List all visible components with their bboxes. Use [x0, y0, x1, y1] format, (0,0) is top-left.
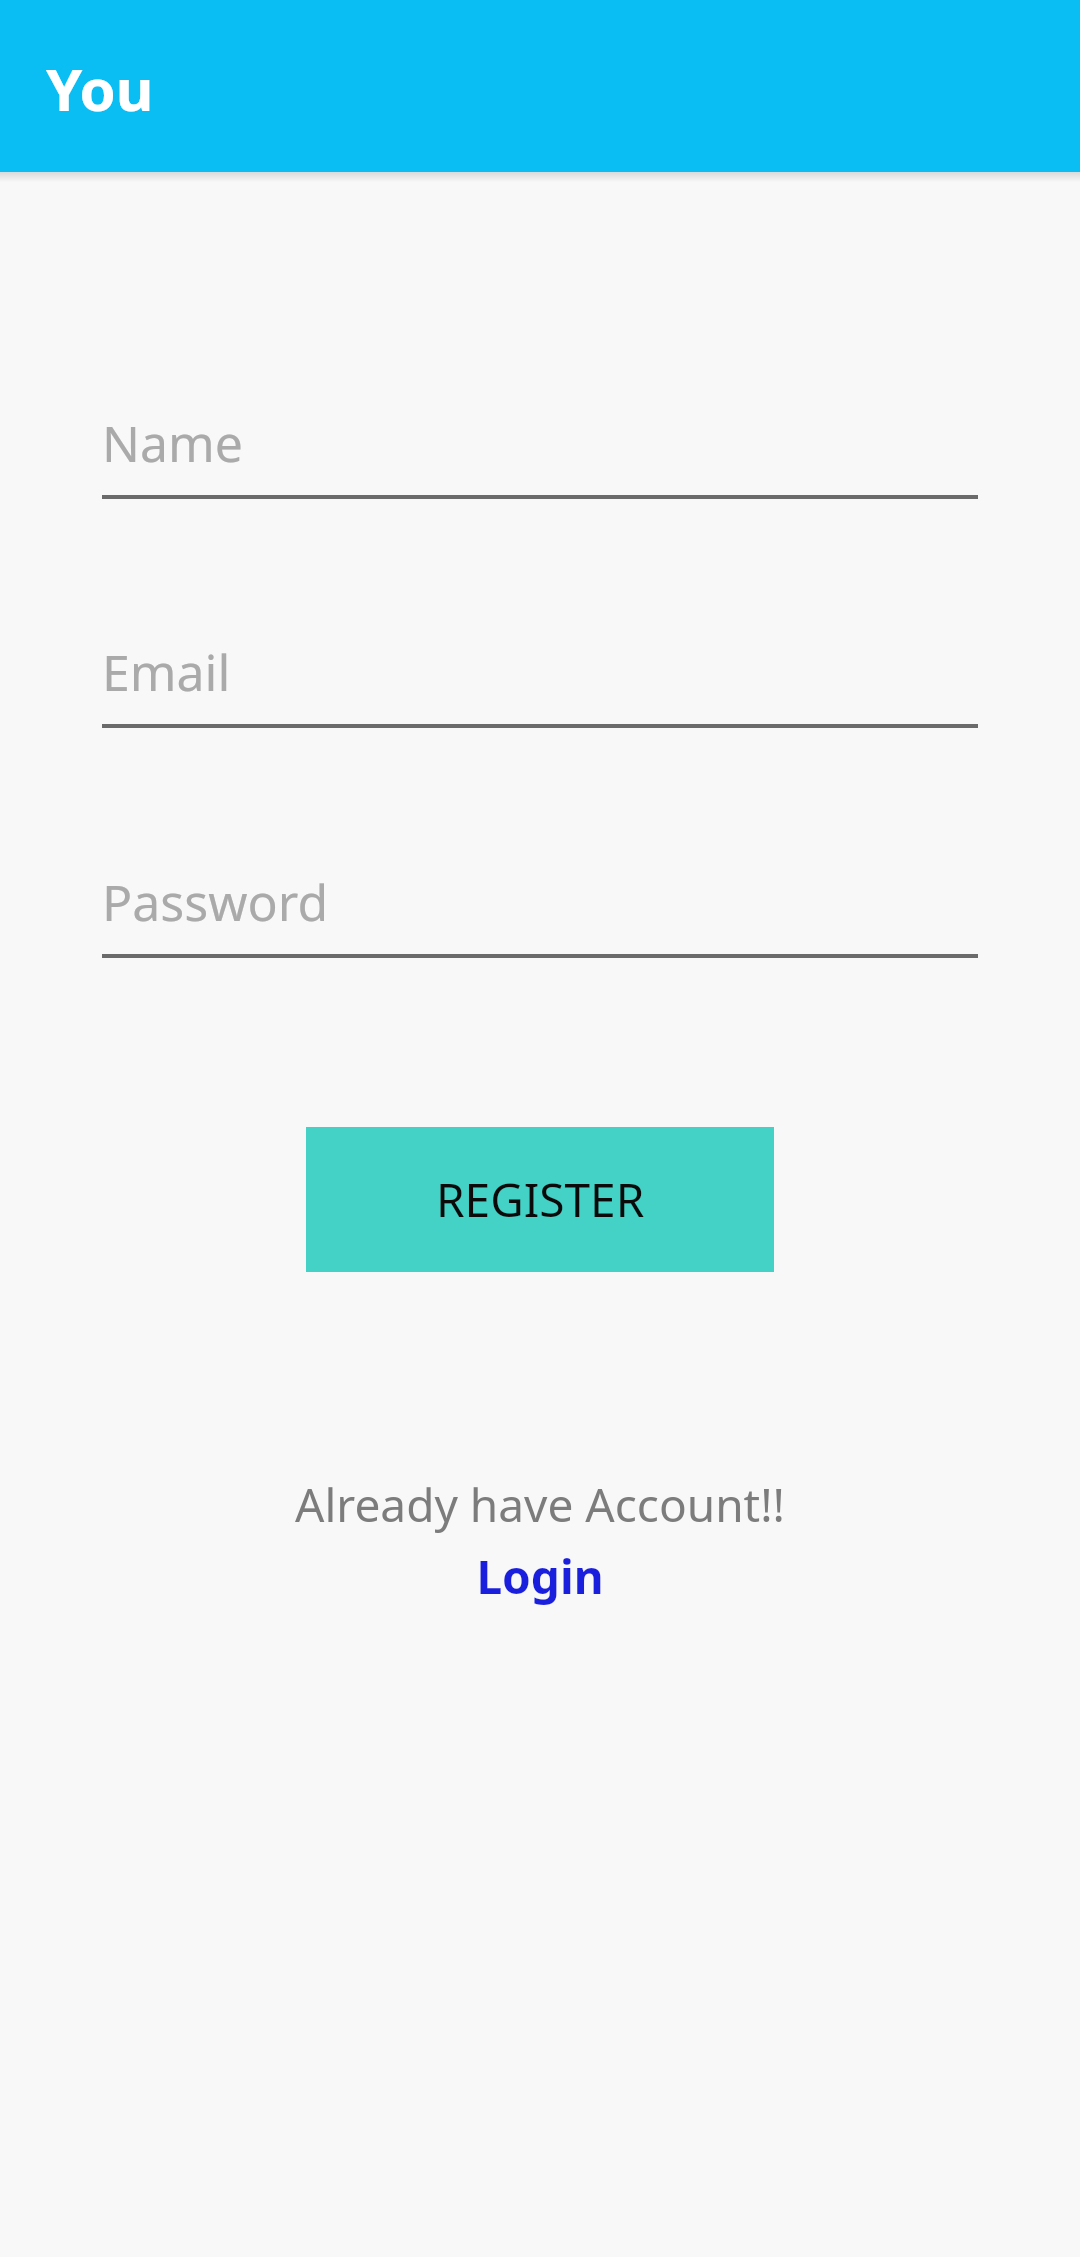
button[interactable]: Name [102, 413, 978, 499]
button[interactable]: Email [102, 642, 978, 728]
staticText: Email [102, 638, 231, 706]
button[interactable]: REGISTER [306, 1127, 774, 1272]
staticText: Password [102, 868, 329, 936]
button[interactable]: Password [102, 872, 978, 958]
staticText: Name [102, 409, 243, 477]
staticText: Already have Account!! [295, 1473, 785, 1535]
staticText: Login [476, 1545, 604, 1608]
staticText: You [46, 49, 154, 128]
button[interactable]: Login [0, 1540, 1080, 1612]
staticText: REGISTER [436, 1168, 645, 1231]
